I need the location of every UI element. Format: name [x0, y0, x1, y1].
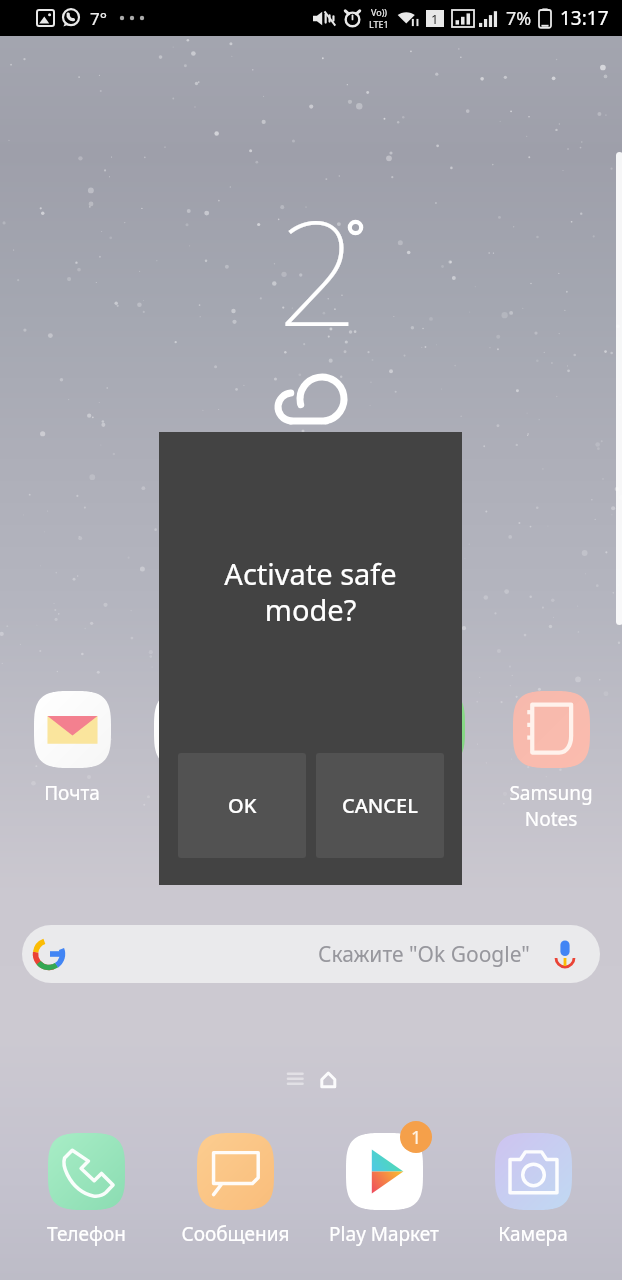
staticText: 1: [411, 1125, 422, 1150]
button[interactable]: Weather, 2 degrees, cloudy: [150, 160, 472, 435]
button[interactable]: Play Маркет: [346, 1133, 423, 1210]
staticText: 13:17: [560, 5, 609, 31]
button[interactable]: CANCEL: [316, 753, 444, 858]
staticText: Vo)): [371, 6, 388, 18]
staticText: Play Маркет: [329, 1221, 439, 1247]
button[interactable]: Телефон: [48, 1133, 125, 1210]
button[interactable]: Bixby Home page: [280, 1066, 311, 1094]
staticText: Сообщения: [181, 1221, 290, 1247]
staticText: 7%: [506, 6, 532, 31]
staticText: 2: [277, 171, 360, 368]
button[interactable]: Google search: [22, 925, 600, 983]
button[interactable]: OK: [178, 753, 306, 858]
staticText: CANCEL: [342, 792, 418, 819]
staticText: Почта: [44, 780, 100, 806]
button[interactable]: Почта: [34, 691, 111, 768]
staticText: Телефон: [47, 1221, 126, 1247]
button[interactable]: App: [154, 691, 231, 768]
button[interactable]: Сообщения: [197, 1133, 274, 1210]
staticText: Activate safe mode?: [224, 554, 397, 630]
button[interactable]: Open Edge panel: [610, 152, 622, 625]
button[interactable]: Samsung Notes: [513, 691, 590, 768]
staticText: 1: [431, 10, 439, 27]
staticText: Камера: [498, 1221, 568, 1247]
staticText: Скажите "Ok Google": [318, 940, 530, 969]
button[interactable]: App: [388, 689, 465, 766]
button[interactable]: Камера: [495, 1133, 572, 1210]
staticText: Samsung Notes: [509, 780, 593, 831]
staticText: 7°: [90, 7, 107, 30]
staticText: LTE1: [369, 18, 389, 30]
staticText: OK: [228, 792, 257, 819]
button[interactable]: Home screen page: [311, 1066, 340, 1094]
